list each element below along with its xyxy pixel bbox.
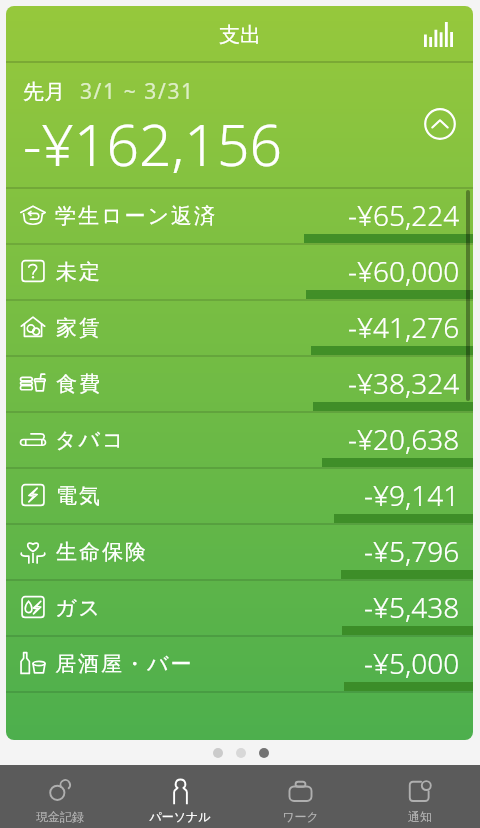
staticText: -¥5,438 bbox=[364, 588, 460, 626]
staticText: パーソナル bbox=[149, 809, 211, 824]
staticText: ガス bbox=[55, 595, 102, 621]
staticText: -¥65,224 bbox=[348, 196, 460, 234]
staticText: 現金記録 bbox=[36, 809, 84, 824]
button[interactable]: Collapse bbox=[424, 108, 456, 140]
staticText: 学生ローン返済 bbox=[55, 203, 217, 229]
staticText: -¥38,324 bbox=[348, 364, 460, 402]
button[interactable]: ガス bbox=[6, 581, 473, 637]
button[interactable]: 通知 bbox=[360, 765, 480, 828]
button[interactable]: ワーク bbox=[240, 765, 360, 828]
staticText: -¥5,000 bbox=[364, 644, 460, 682]
staticText: -¥41,276 bbox=[348, 308, 460, 346]
button[interactable]: パーソナル bbox=[120, 765, 240, 828]
button[interactable]: 学生ローン返済 bbox=[6, 189, 473, 245]
staticText: -¥5,796 bbox=[364, 532, 460, 570]
button[interactable]: 現金記録 bbox=[0, 765, 120, 828]
button[interactable]: 食費 bbox=[6, 357, 473, 413]
staticText: 通知 bbox=[408, 809, 432, 824]
staticText: 食費 bbox=[55, 371, 101, 397]
staticText: 3/1 ~ 3/31 bbox=[80, 77, 195, 106]
button[interactable]: Chart bbox=[424, 22, 453, 47]
button[interactable]: 生命保険 bbox=[6, 525, 473, 581]
staticText: 生命保険 bbox=[55, 539, 147, 565]
staticText: -¥162,156 bbox=[23, 105, 283, 183]
staticText: -¥20,638 bbox=[348, 420, 460, 458]
staticText: 居酒屋・バー bbox=[55, 651, 194, 677]
staticText: -¥60,000 bbox=[348, 252, 460, 290]
staticText: 先月 bbox=[23, 79, 65, 105]
staticText: 支出 bbox=[219, 22, 261, 48]
button[interactable]: 未定 bbox=[6, 245, 473, 301]
staticText: 家賃 bbox=[55, 315, 101, 341]
button[interactable]: 居酒屋・バー bbox=[6, 637, 473, 693]
staticText: -¥9,141 bbox=[364, 476, 460, 514]
staticText: 電気 bbox=[55, 483, 101, 509]
staticText: 未定 bbox=[55, 259, 101, 285]
staticText: ワーク bbox=[282, 809, 319, 824]
button[interactable]: 電気 bbox=[6, 469, 473, 525]
button[interactable]: 家賃 bbox=[6, 301, 473, 357]
button[interactable]: タバコ bbox=[6, 413, 473, 469]
staticText: タバコ bbox=[55, 427, 126, 453]
